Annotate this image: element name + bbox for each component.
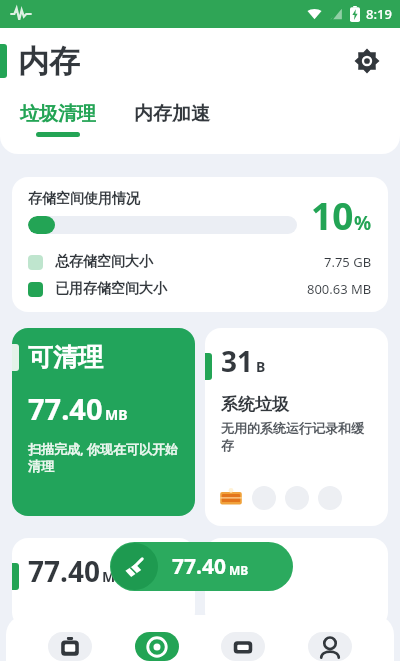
staticText: MB <box>105 405 128 424</box>
staticText: 77.40 <box>28 389 103 428</box>
staticText: 已用存储空间大小 <box>55 280 167 298</box>
staticText: 垃圾清理 <box>20 102 96 126</box>
staticText: MB <box>102 567 125 586</box>
button[interactable]: 31 <box>205 328 388 526</box>
button[interactable]: Scan <box>135 632 179 661</box>
staticText: 可清理 <box>28 342 103 373</box>
button[interactable]: 可清理 <box>12 328 195 516</box>
staticText: 0 <box>221 552 238 590</box>
staticText: 7.75 GB <box>324 253 372 271</box>
staticText: 无用的系统运行记录和缓存 <box>221 420 376 454</box>
staticText: 31 <box>221 342 254 380</box>
staticText: 总存储空间大小 <box>55 253 153 271</box>
button[interactable]: 0 <box>205 538 388 628</box>
button[interactable]: 77.40 <box>110 542 293 591</box>
button[interactable]: 垃圾清理 <box>14 98 102 141</box>
staticText: 存储空间使用情况 <box>28 190 140 208</box>
staticText: 系统垃圾 <box>221 394 289 415</box>
button[interactable]: Me <box>308 632 352 661</box>
button[interactable]: 77.40 <box>12 538 195 628</box>
staticText: 77.40 <box>172 552 226 581</box>
button[interactable]: 内存加速 <box>128 98 216 141</box>
staticText: 内存加速 <box>134 102 210 126</box>
staticText: % <box>354 210 372 236</box>
button[interactable]: 存储空间使用情况 <box>12 177 388 312</box>
button[interactable]: Settings <box>342 36 392 86</box>
staticText: 10 <box>311 190 354 240</box>
staticText: KB <box>240 567 259 586</box>
button[interactable]: Clean <box>48 632 92 661</box>
staticText: B <box>256 357 266 376</box>
staticText: MB <box>229 562 249 578</box>
staticText: 800.63 MB <box>307 280 372 298</box>
staticText: 8:19 <box>366 5 392 23</box>
staticText: 扫描完成, 你现在可以开始清理 <box>28 440 181 475</box>
staticText: 内存 <box>18 42 80 81</box>
button[interactable]: Tools <box>221 632 265 661</box>
staticText: 77.40 <box>28 552 100 590</box>
